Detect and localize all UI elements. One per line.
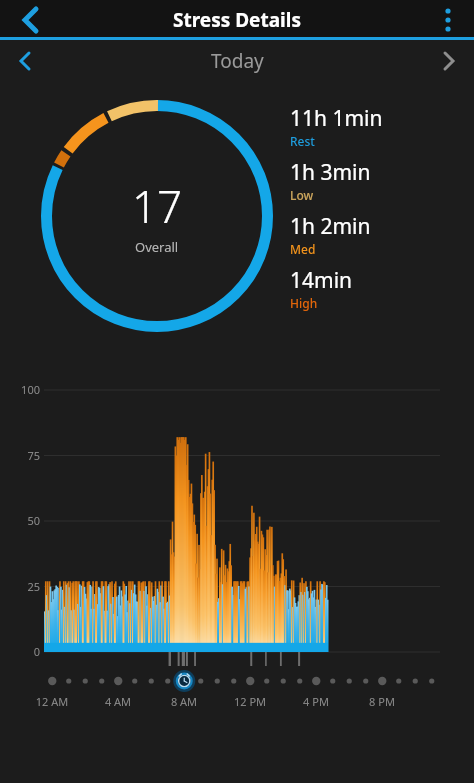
staticText: 4 PM (288, 694, 344, 709)
button[interactable]: Next day (430, 42, 468, 80)
staticText: 8 PM (354, 694, 410, 709)
button[interactable]: More options (428, 0, 468, 40)
button[interactable]: Previous day (6, 42, 44, 80)
staticText: 8 AM (156, 694, 212, 709)
staticText: 17 (132, 176, 183, 236)
staticText: 12 AM (24, 694, 80, 709)
staticText: Rest (290, 133, 315, 149)
staticText: Low (290, 187, 314, 203)
staticText: 1h 2min (290, 212, 371, 241)
staticText: High (290, 295, 318, 311)
staticText: 25 (6, 579, 40, 594)
staticText: 0 (6, 644, 40, 659)
staticText: 100 (6, 382, 40, 397)
staticText: 75 (6, 448, 40, 463)
staticText: Med (290, 241, 316, 257)
button[interactable]: Back (10, 0, 50, 40)
staticText: Overall (135, 238, 179, 256)
staticText: 12 PM (222, 694, 278, 709)
staticText: 4 AM (90, 694, 146, 709)
staticText: 1h 3min (290, 158, 371, 187)
staticText: 50 (6, 513, 40, 528)
staticText: Today (211, 48, 264, 74)
staticText: Stress Details (173, 7, 301, 33)
staticText: 11h 1min (290, 104, 383, 133)
staticText: 14min (290, 266, 353, 295)
